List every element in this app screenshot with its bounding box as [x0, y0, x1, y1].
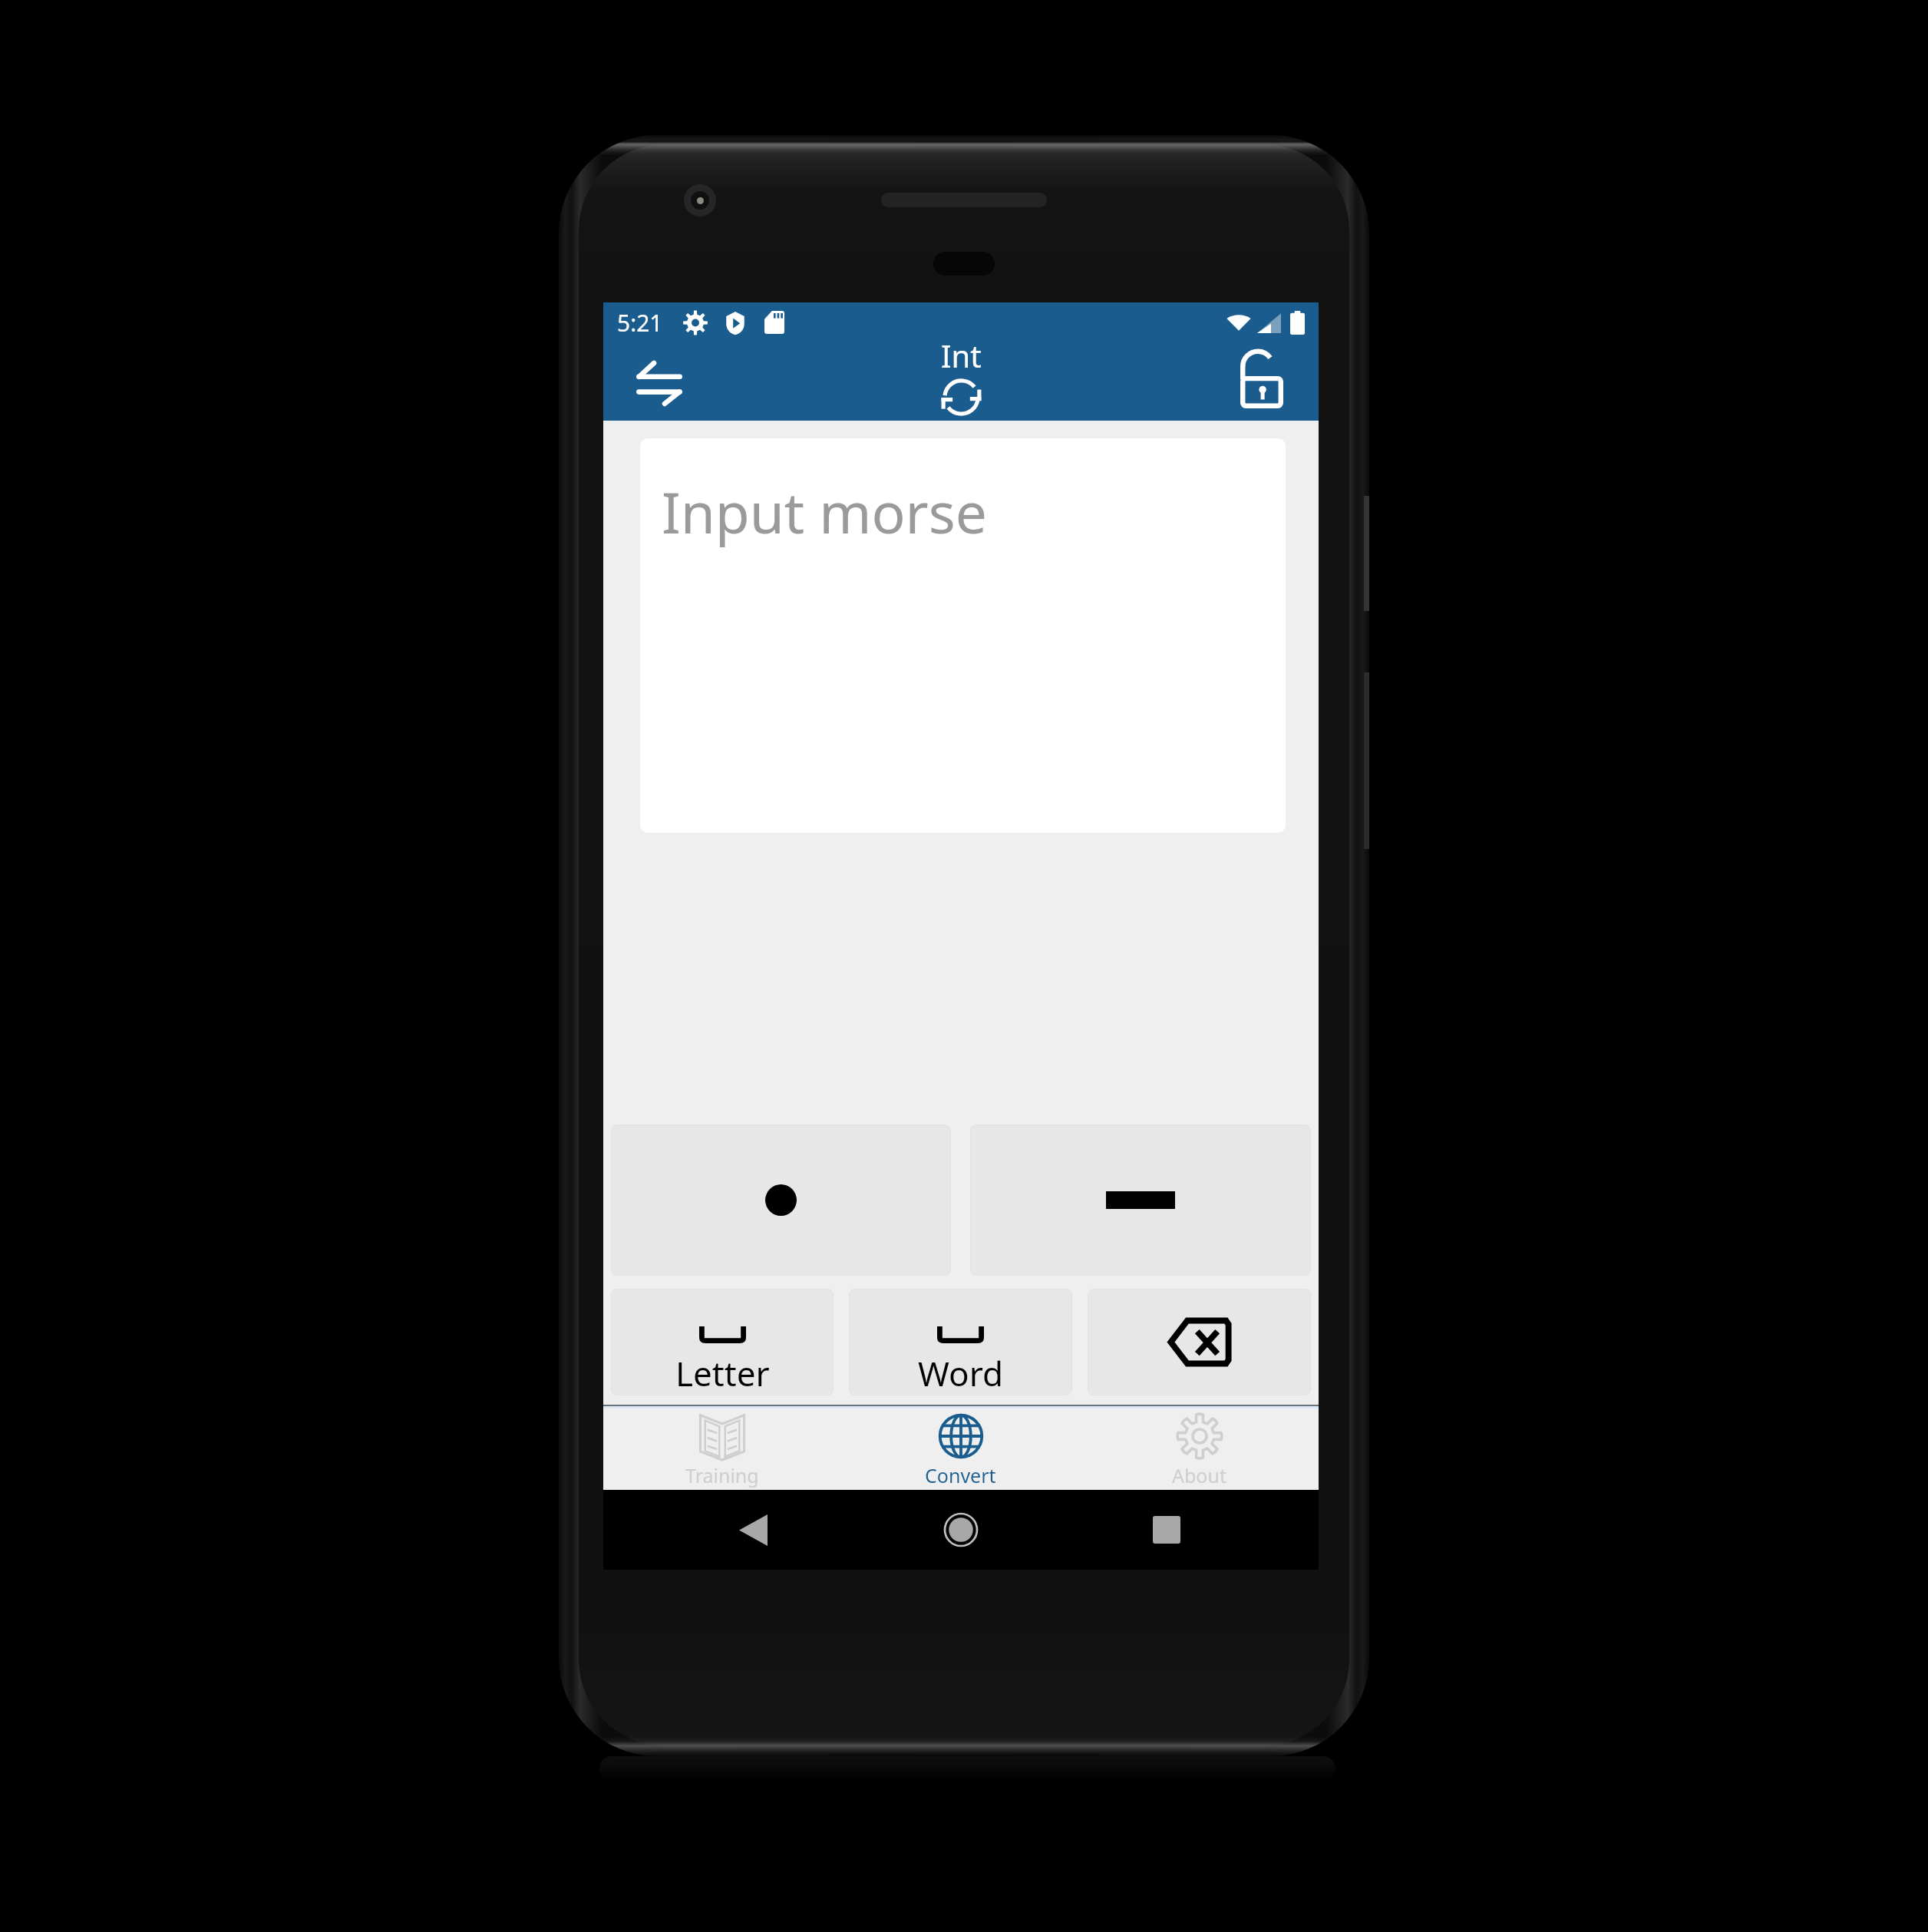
button[interactable]: Convert	[841, 1409, 1080, 1490]
staticText: Convert	[925, 1462, 996, 1488]
button[interactable]: Word	[849, 1289, 1072, 1395]
staticText: Letter	[675, 1350, 770, 1395]
staticText: About	[1172, 1462, 1226, 1488]
staticText: Training	[685, 1462, 759, 1488]
button[interactable]: About	[1080, 1409, 1319, 1490]
button[interactable]: Backspace	[1088, 1289, 1311, 1395]
button[interactable]: Unlock	[1225, 342, 1299, 419]
staticText: Int	[941, 335, 982, 376]
button[interactable]: Swap direction	[622, 345, 697, 418]
button[interactable]: Recents	[1080, 1490, 1319, 1570]
button[interactable]: Dash	[970, 1125, 1311, 1276]
button[interactable]: Switch code table (Int)	[915, 335, 1007, 417]
staticText: Word	[918, 1350, 1004, 1395]
button[interactable]: Home	[841, 1490, 1080, 1570]
staticText: Input morse	[662, 474, 987, 550]
button[interactable]: Training	[603, 1409, 841, 1490]
button[interactable]: Dot	[611, 1125, 951, 1276]
button[interactable]: Input morse	[640, 438, 1286, 833]
staticText: 5:21	[617, 307, 663, 339]
button[interactable]: Letter	[611, 1289, 834, 1395]
button[interactable]: Back	[603, 1490, 841, 1570]
